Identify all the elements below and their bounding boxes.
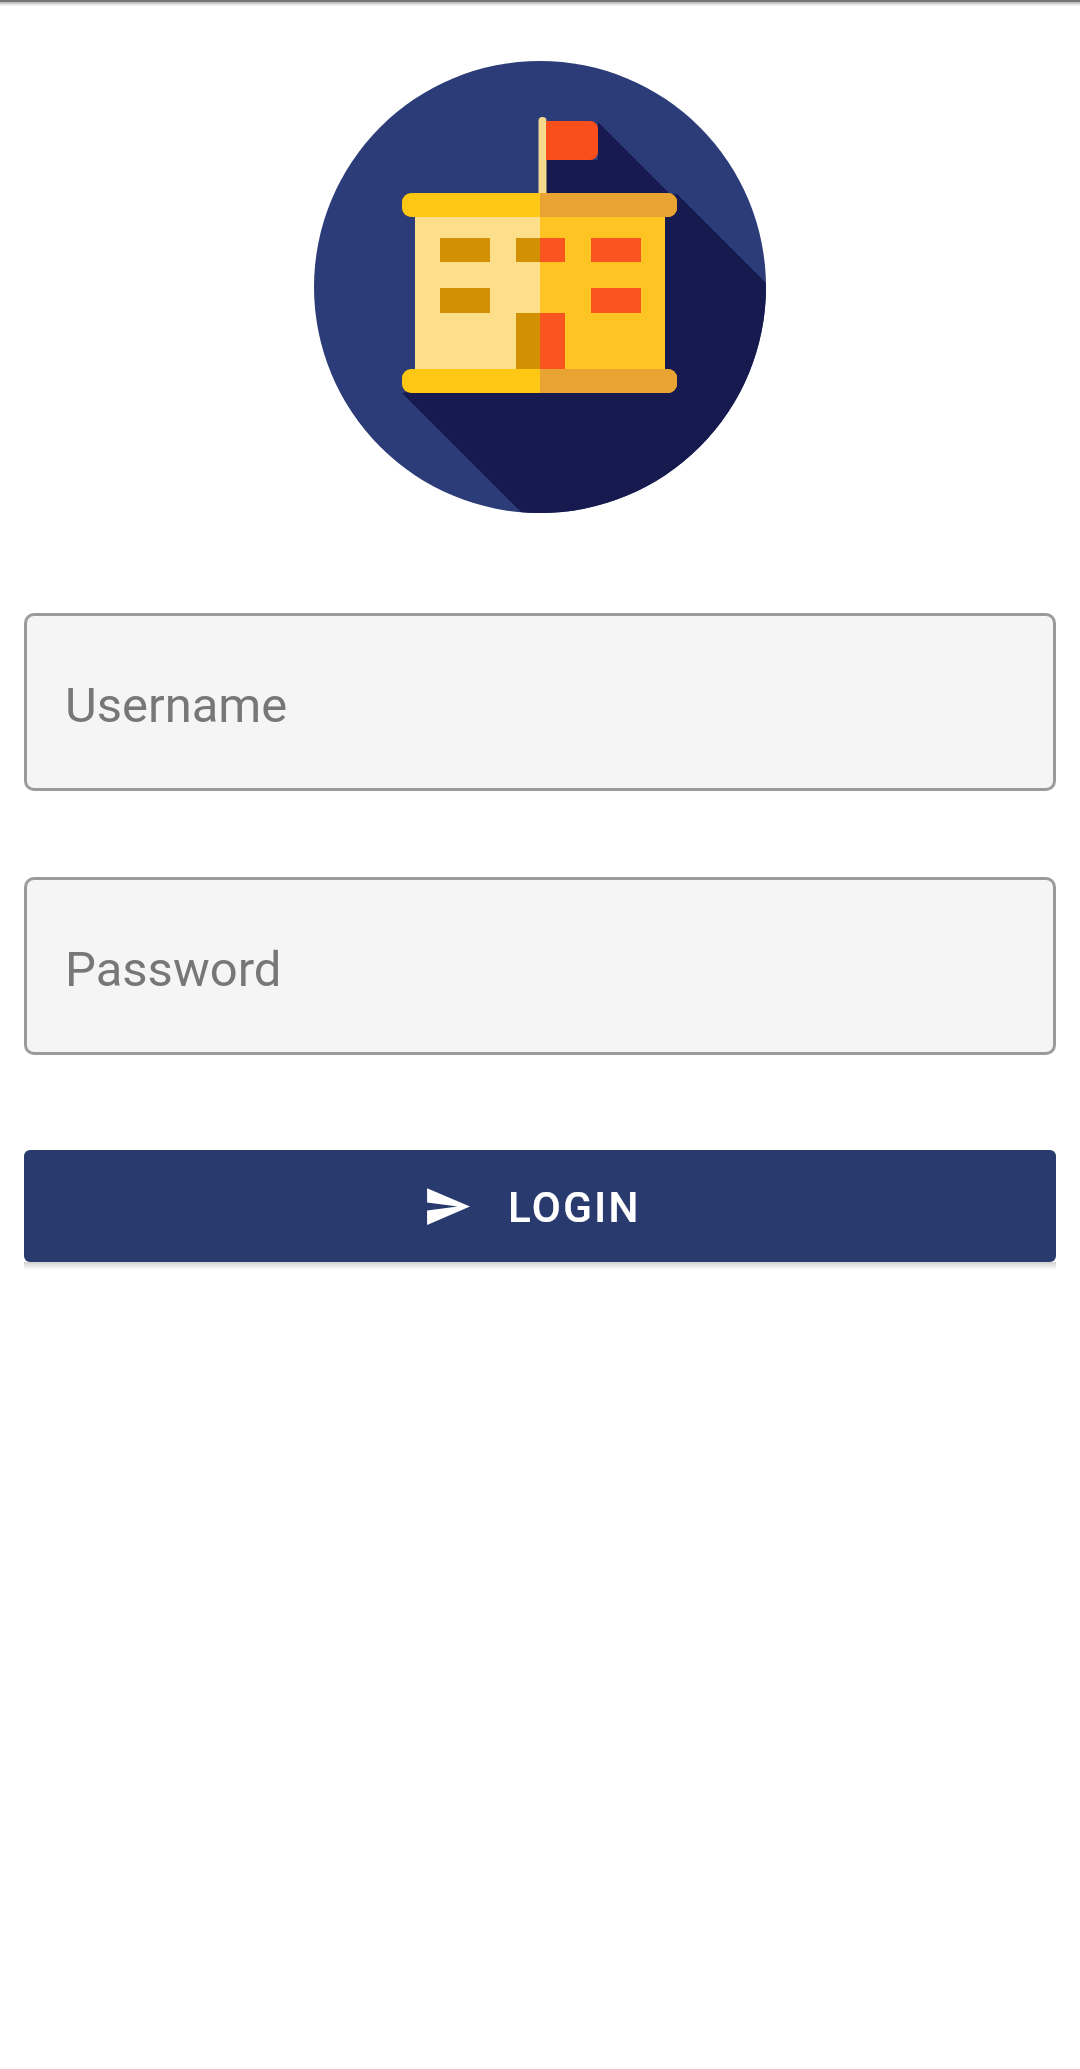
- staticText: Password: [65, 941, 282, 998]
- button[interactable]: Username: [24, 613, 1056, 791]
- button[interactable]: LOGIN: [24, 1150, 1056, 1262]
- staticText: LOGIN: [508, 1183, 641, 1232]
- button[interactable]: Password: [24, 877, 1056, 1055]
- staticText: Username: [65, 677, 288, 734]
